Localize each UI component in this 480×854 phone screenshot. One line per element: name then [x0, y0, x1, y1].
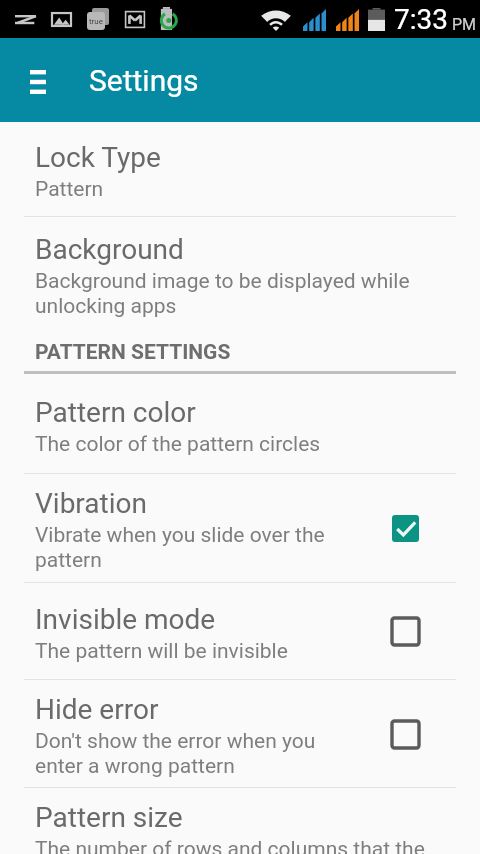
- staticText: true: [89, 17, 103, 26]
- staticText: Vibration: [35, 487, 147, 520]
- staticText: PM: [452, 15, 477, 34]
- button[interactable]: Background: [0, 217, 480, 334]
- button[interactable]: Hide error: [0, 680, 480, 787]
- staticText: Vibrate when you slide over the pattern: [35, 523, 346, 573]
- button[interactable]: Open navigation drawer: [15, 59, 61, 105]
- button[interactable]: Pattern size: [0, 788, 480, 854]
- button[interactable]: Disabled checkbox: [388, 717, 422, 751]
- staticText: The number of rows and columns that the …: [35, 837, 430, 854]
- staticText: Pattern: [35, 177, 104, 202]
- staticText: Background: [35, 233, 184, 266]
- staticText: Background image to be displayed while u…: [35, 269, 430, 319]
- staticText: Invisible mode: [35, 603, 216, 636]
- staticText: Don't show the error when you enter a wr…: [35, 729, 346, 779]
- button[interactable]: Disabled checkbox: [388, 614, 422, 648]
- staticText: PATTERN SETTINGS: [35, 340, 231, 365]
- staticText: Settings: [89, 63, 199, 98]
- staticText: 7:33: [394, 3, 448, 36]
- staticText: Pattern color: [35, 396, 196, 429]
- staticText: The pattern will be invisible: [35, 639, 288, 664]
- button[interactable]: Pattern color: [0, 374, 480, 473]
- button[interactable]: Vibration: [0, 474, 480, 582]
- staticText: Pattern size: [35, 801, 183, 834]
- button[interactable]: Enabled checkbox: [388, 511, 422, 545]
- staticText: The color of the pattern circles: [35, 432, 321, 457]
- staticText: Hide error: [35, 693, 159, 726]
- button[interactable]: Invisible mode: [0, 583, 480, 679]
- button[interactable]: Lock Type: [0, 122, 480, 216]
- staticText: Lock Type: [35, 141, 161, 174]
